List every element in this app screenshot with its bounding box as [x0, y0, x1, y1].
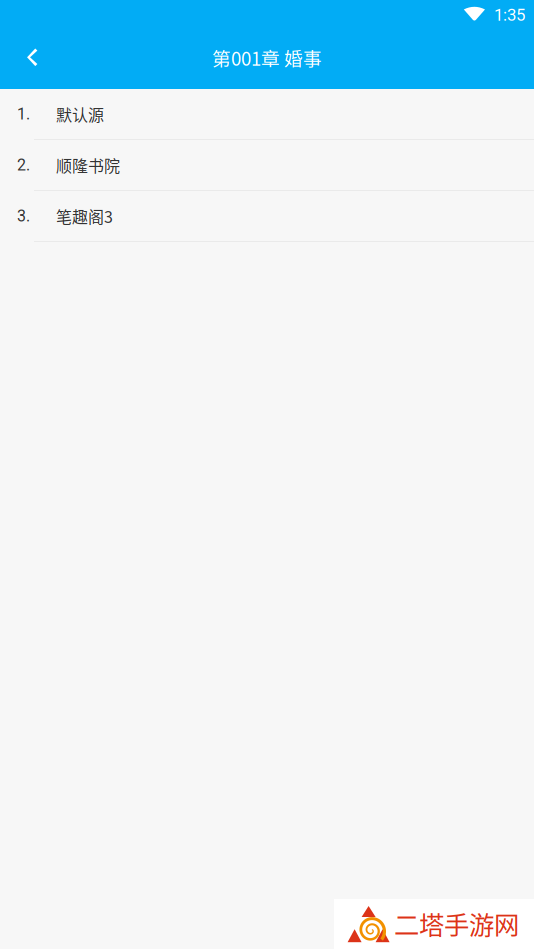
- button[interactable]: 3.: [0, 191, 534, 242]
- staticText: 默认源: [56, 102, 104, 126]
- staticText: 顺隆书院: [56, 153, 120, 177]
- staticText: 第001章 婚事: [212, 44, 322, 71]
- staticText: 笔趣阁3: [56, 204, 113, 228]
- button[interactable]: 2.: [0, 140, 534, 191]
- button[interactable]: 1.: [0, 89, 534, 140]
- staticText: 二塔手游网: [394, 905, 519, 942]
- button[interactable]: Back: [0, 27, 66, 90]
- staticText: 1:35: [494, 5, 525, 25]
- staticText: 2.: [17, 156, 30, 174]
- staticText: 1.: [17, 105, 30, 123]
- staticText: 3.: [17, 207, 30, 225]
